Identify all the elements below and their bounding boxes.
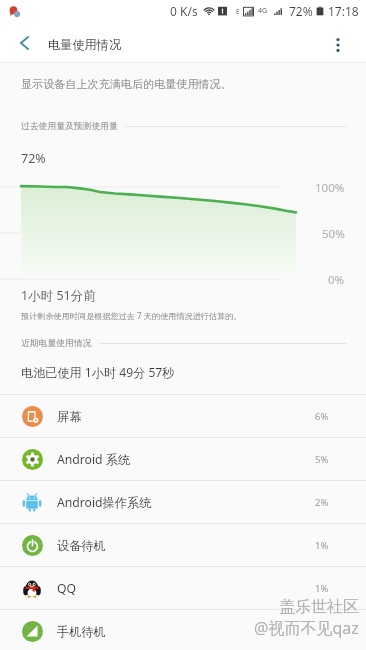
staticText: 0% bbox=[328, 272, 345, 288]
staticText: 手机待机 bbox=[57, 624, 106, 639]
staticText: 1% bbox=[315, 539, 329, 552]
staticText: 1小时 51分前 bbox=[21, 287, 96, 304]
staticText: 显示设备自上次充满电后的电量使用情况。 bbox=[21, 77, 232, 91]
button[interactable]: QQ bbox=[0, 567, 366, 610]
staticText: 17:18 bbox=[328, 3, 359, 19]
button[interactable]: Android 系统 bbox=[0, 438, 366, 481]
staticText: 6% bbox=[315, 410, 329, 423]
staticText: 过去使用量及预测使用量 bbox=[21, 121, 118, 132]
staticText: 72% bbox=[21, 150, 46, 167]
staticText: 近期电量使用情况 bbox=[21, 338, 92, 349]
staticText: 4G bbox=[258, 6, 268, 16]
button[interactable]: 设备待机 bbox=[0, 524, 366, 567]
staticText: @视而不见qaz bbox=[254, 617, 359, 639]
staticText: 2% bbox=[315, 496, 329, 509]
button[interactable]: 手机待机 bbox=[0, 610, 366, 650]
staticText: 屏幕 bbox=[57, 409, 82, 424]
staticText: Android操作系统 bbox=[57, 494, 152, 511]
staticText: 设备待机 bbox=[57, 538, 106, 553]
staticText: 72% bbox=[289, 3, 313, 19]
staticText: 预计剩余使用时间是根据您过去 7 天的使用情况进行估算的。 bbox=[21, 310, 242, 321]
staticText: 100% bbox=[315, 180, 345, 196]
staticText: 电量使用情况 bbox=[48, 37, 122, 52]
staticText: 电池已使用 1小时 49分 57秒 bbox=[21, 364, 175, 381]
staticText: 50% bbox=[322, 226, 345, 242]
staticText: 0 K/s bbox=[170, 3, 198, 19]
staticText: QQ bbox=[57, 580, 77, 597]
staticText: 1% bbox=[315, 582, 329, 595]
button[interactable]: Android操作系统 bbox=[0, 481, 366, 524]
button[interactable]: More options bbox=[321, 24, 366, 62]
button[interactable]: 屏幕 bbox=[0, 395, 366, 438]
button[interactable]: Back bbox=[0, 22, 48, 60]
staticText: E bbox=[236, 7, 240, 16]
staticText: Android 系统 bbox=[57, 451, 131, 468]
staticText: 5% bbox=[315, 453, 329, 466]
staticText: 盖乐世社区 bbox=[279, 597, 359, 617]
